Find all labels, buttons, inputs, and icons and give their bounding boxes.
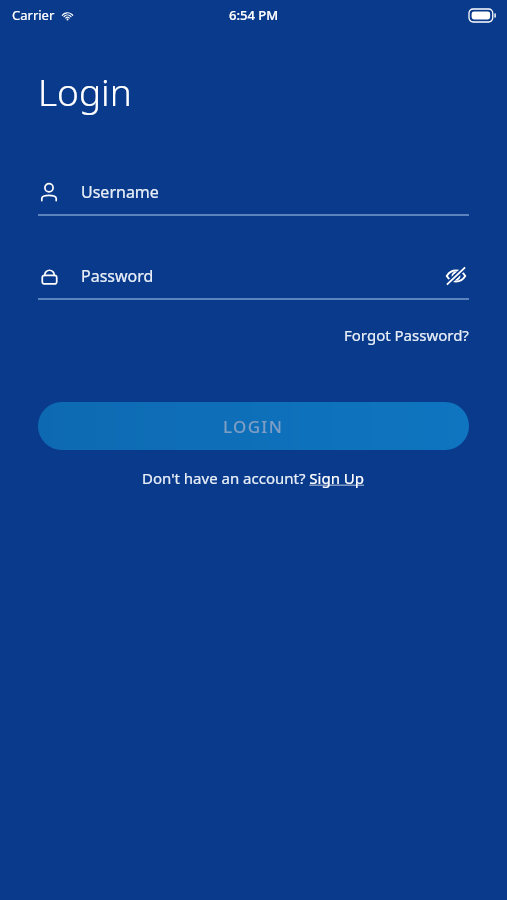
button[interactable]: Username bbox=[38, 176, 469, 216]
staticText: 6:54 PM bbox=[229, 6, 279, 24]
button[interactable]: LOGIN bbox=[38, 402, 469, 450]
button[interactable]: Forgot Password? bbox=[342, 320, 471, 350]
staticText: Username bbox=[81, 181, 159, 203]
button[interactable]: Don't have an account? Sign Up bbox=[138, 464, 369, 492]
staticText: LOGIN bbox=[223, 415, 284, 438]
staticText: Password bbox=[81, 265, 154, 287]
staticText: Login bbox=[38, 66, 132, 116]
staticText: Don't have an account? Sign Up bbox=[142, 468, 365, 488]
staticText: Forgot Password? bbox=[344, 325, 469, 345]
staticText: Carrier bbox=[12, 6, 55, 24]
button[interactable]: Password bbox=[38, 260, 469, 300]
button[interactable]: Toggle password visibility bbox=[443, 263, 469, 289]
